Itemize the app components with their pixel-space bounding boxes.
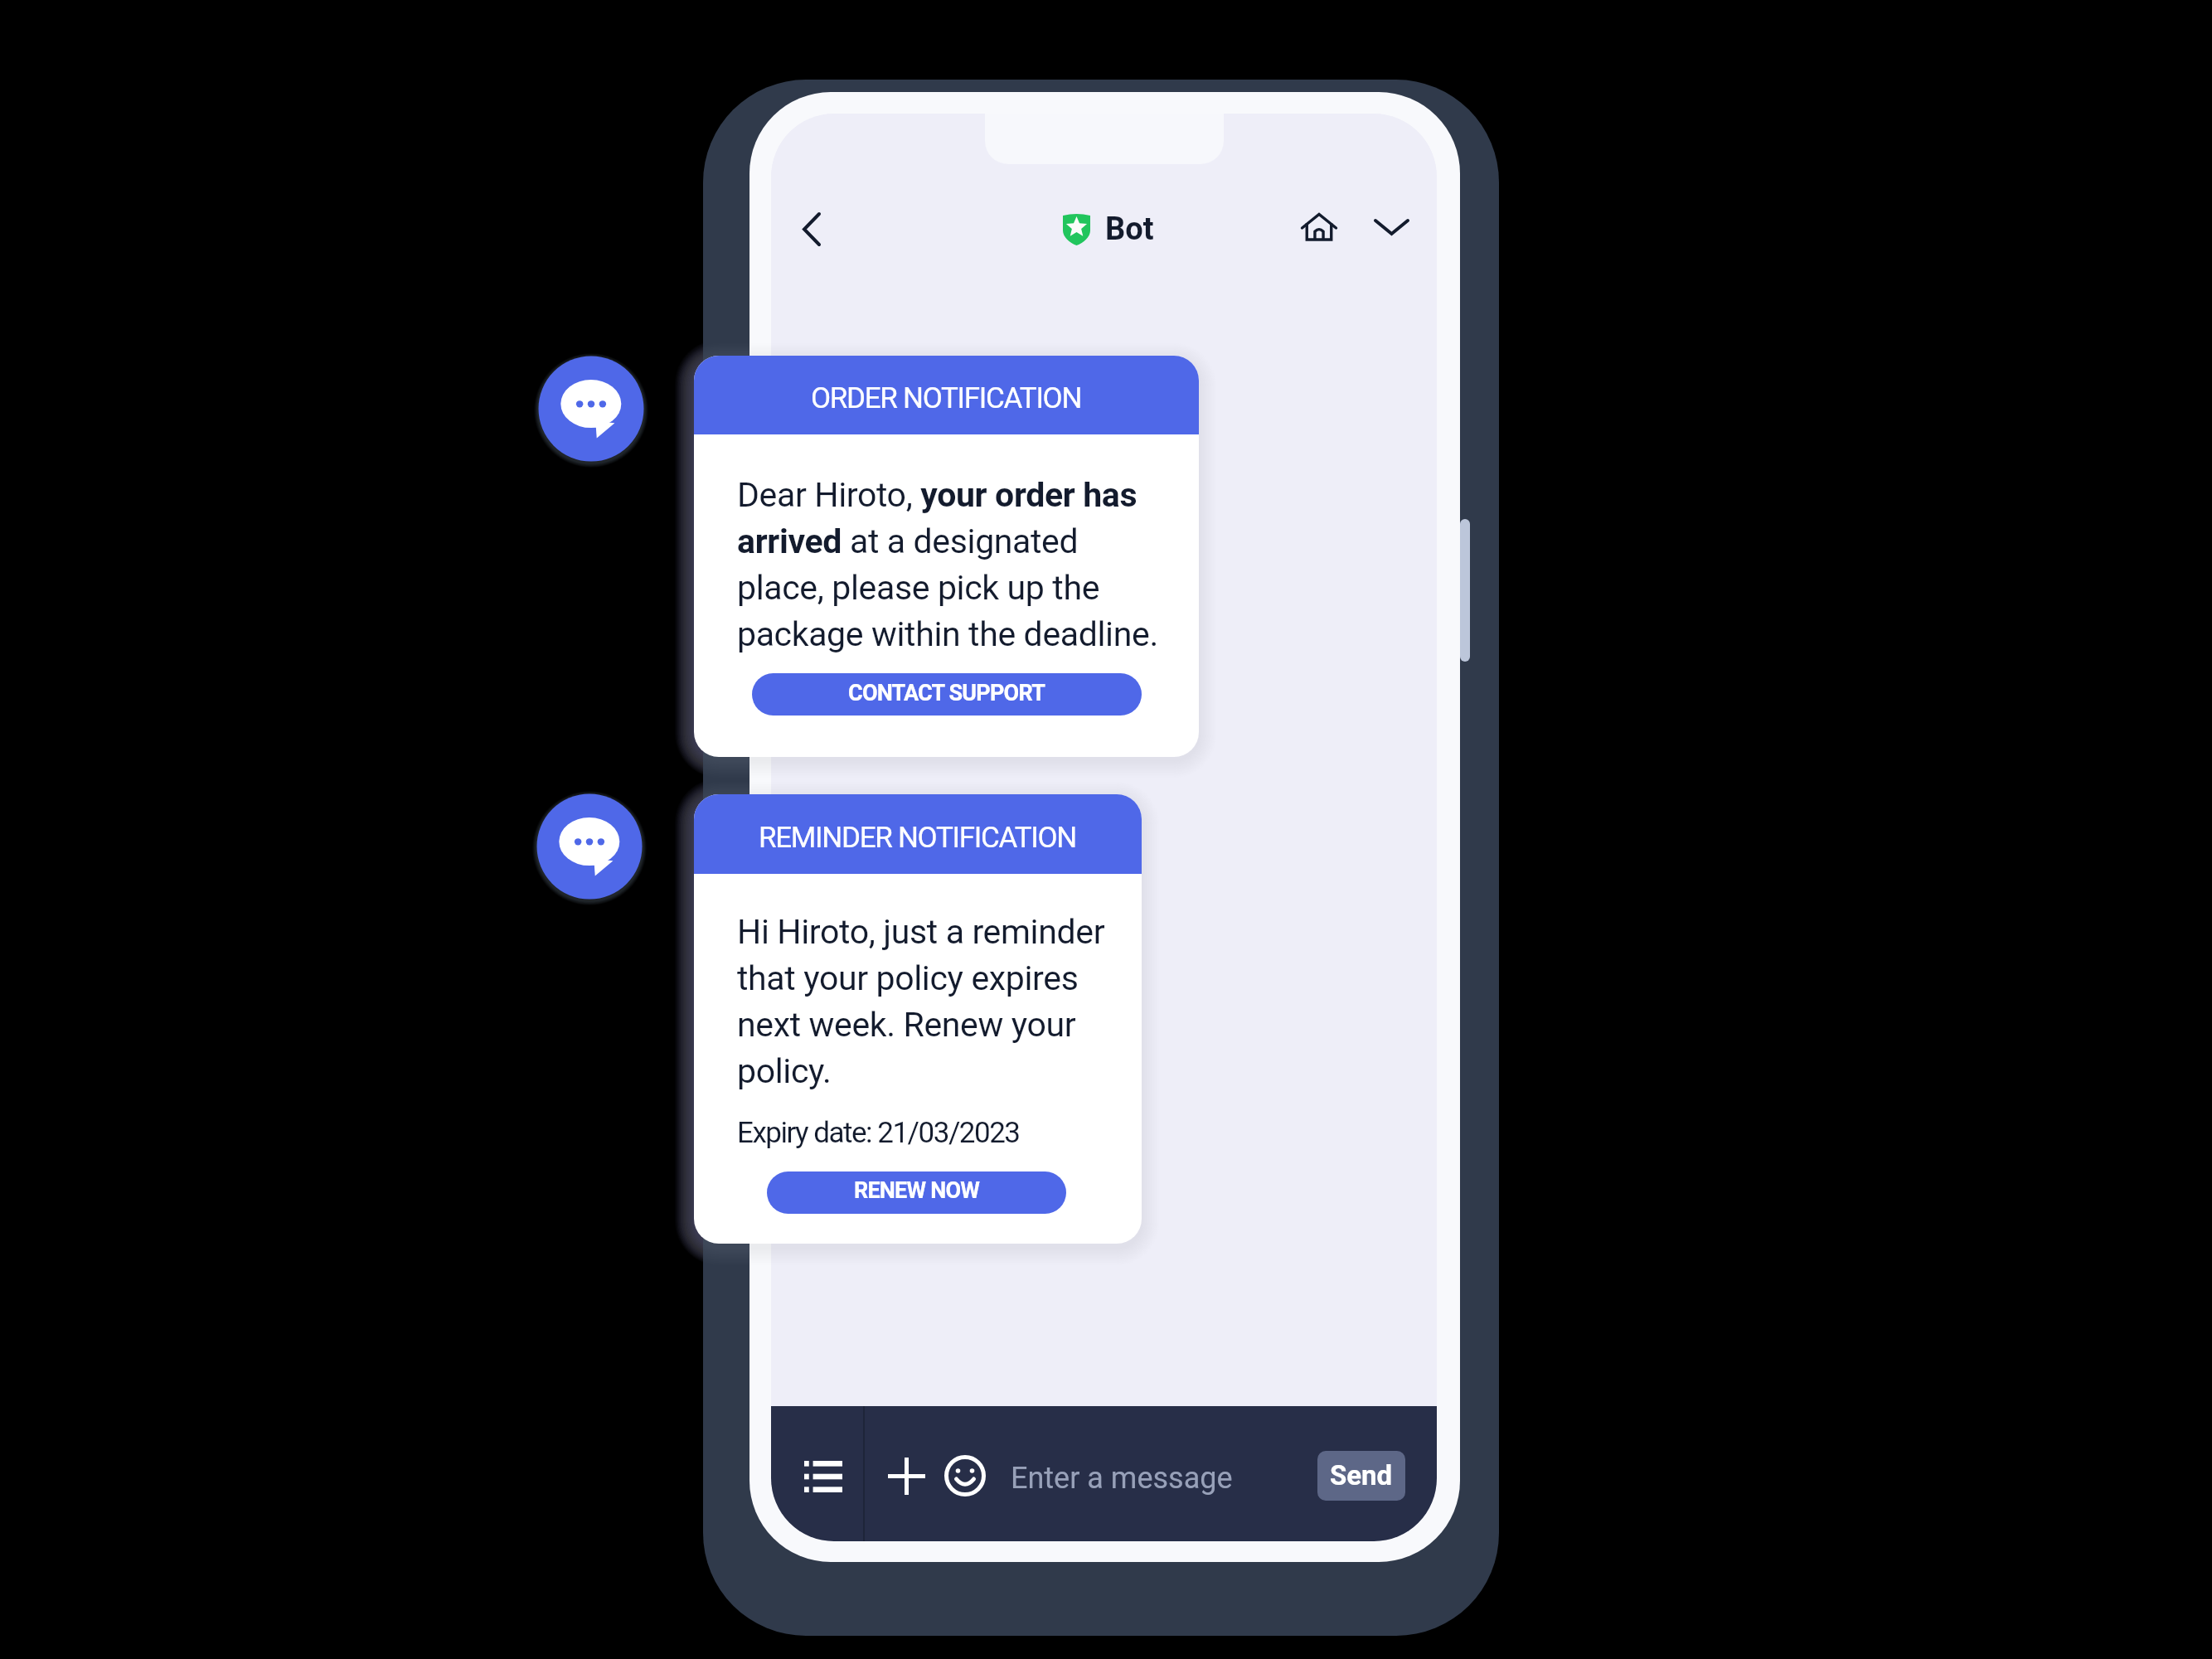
staticText: Expiry date: 21/03/2023 [737,1116,1020,1150]
staticText: REMINDER NOTIFICATION [759,821,1077,855]
staticText: Dear Hiroto, your order has arrived at a… [737,475,1170,654]
button[interactable]: Home [1289,197,1349,257]
staticText: Hi Hiroto, just a reminder that your pol… [737,912,1127,1091]
staticText: ORDER NOTIFICATION [811,381,1082,415]
button[interactable]: Emoji [937,1448,993,1504]
staticText: Bot [1105,211,1154,248]
staticText: RENEW NOW [854,1177,980,1204]
staticText: Enter a message [1011,1461,1233,1496]
button[interactable]: Collapse [1361,197,1421,257]
button[interactable]: Menu [785,1438,861,1515]
button[interactable]: RENEW NOW [767,1171,1066,1214]
staticText: Send [1330,1459,1393,1492]
button[interactable]: Add [868,1438,944,1514]
button[interactable]: Back [782,199,842,259]
staticText: CONTACT SUPPORT [848,680,1045,706]
button[interactable]: Send [1317,1451,1405,1501]
button[interactable]: CONTACT SUPPORT [752,673,1142,716]
